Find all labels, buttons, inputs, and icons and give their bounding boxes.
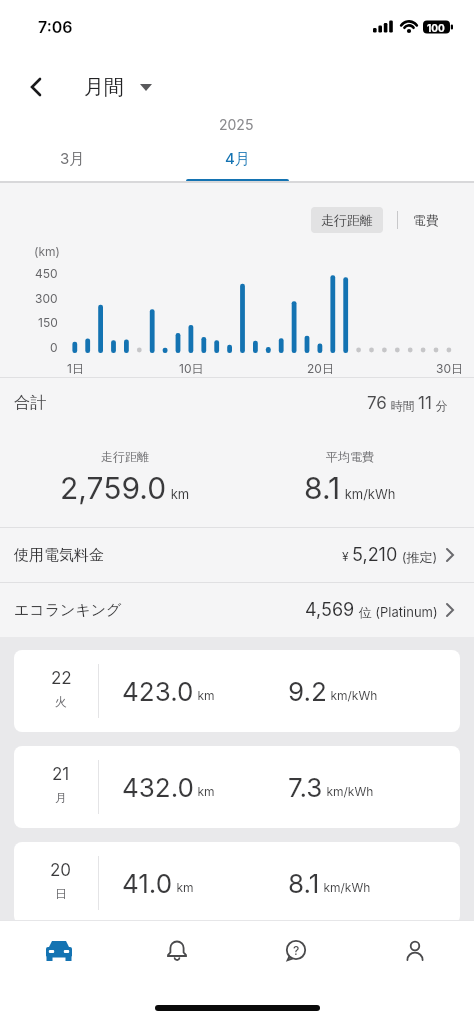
button[interactable]: エコランキング bbox=[0, 583, 474, 637]
button[interactable]: 3月 bbox=[34, 140, 110, 176]
button[interactable] bbox=[355, 920, 474, 982]
staticText: 8.1 bbox=[304, 470, 341, 506]
staticText: km bbox=[173, 880, 194, 895]
staticText: 432.0 bbox=[122, 772, 194, 803]
button[interactable] bbox=[18, 69, 54, 105]
staticText: ¥ bbox=[342, 549, 352, 564]
staticText: 21 bbox=[52, 764, 70, 785]
staticText: 20 bbox=[50, 860, 72, 881]
staticText: 11 bbox=[418, 393, 432, 414]
staticText: ? bbox=[293, 943, 300, 958]
staticText: km bbox=[194, 784, 215, 799]
staticText: 日 bbox=[55, 886, 67, 901]
staticText: 100 bbox=[427, 22, 445, 34]
staticText: (km) bbox=[34, 244, 60, 259]
button[interactable]: 使用電気料金 bbox=[0, 528, 474, 582]
staticText: 76 bbox=[367, 393, 387, 414]
staticText: 4月 bbox=[225, 149, 250, 168]
staticText: km/kWh bbox=[341, 486, 396, 502]
staticText: 30日 bbox=[436, 361, 463, 376]
staticText: 41.0 bbox=[122, 868, 173, 899]
staticText: 22 bbox=[51, 668, 72, 689]
staticText: km/kWh bbox=[320, 880, 371, 895]
button[interactable]: 21 bbox=[14, 746, 460, 828]
button[interactable] bbox=[118, 920, 236, 982]
button[interactable]: 走行距離 bbox=[311, 207, 383, 233]
staticText: 2025 bbox=[219, 116, 254, 133]
staticText: km/kWh bbox=[323, 784, 374, 799]
button[interactable]: 4月 bbox=[199, 140, 275, 176]
staticText: 位 (Platinum) bbox=[355, 604, 438, 620]
staticText: 7.3 bbox=[288, 772, 323, 803]
staticText: 0 bbox=[50, 340, 58, 355]
staticText: 450 bbox=[35, 266, 58, 281]
staticText: 423.0 bbox=[122, 676, 194, 707]
staticText: 電費 bbox=[413, 212, 439, 228]
staticText: 合計 bbox=[14, 393, 46, 413]
staticText: 走行距離 bbox=[321, 212, 373, 228]
staticText: 走行距離 bbox=[101, 449, 149, 464]
staticText: 使用電気料金 bbox=[14, 546, 104, 565]
staticText: 時間 bbox=[387, 398, 418, 413]
staticText: 5,210 bbox=[352, 544, 398, 566]
button[interactable]: 電費 bbox=[413, 207, 439, 233]
staticText: (推定) bbox=[398, 549, 438, 565]
button[interactable]: 22 bbox=[14, 650, 460, 732]
staticText: 20日 bbox=[307, 361, 334, 376]
staticText: km/kWh bbox=[327, 688, 378, 703]
staticText: 150 bbox=[38, 315, 58, 330]
staticText: 8.1 bbox=[288, 868, 320, 899]
staticText: 月 bbox=[55, 790, 67, 805]
staticText: km bbox=[194, 688, 215, 703]
staticText: 300 bbox=[35, 291, 58, 306]
button[interactable]: ? bbox=[236, 920, 355, 982]
staticText: 3月 bbox=[60, 149, 85, 168]
staticText: 9.2 bbox=[288, 676, 327, 707]
staticText: 10日 bbox=[179, 361, 204, 376]
staticText: 平均電費 bbox=[326, 449, 374, 464]
button[interactable]: 20 bbox=[14, 842, 460, 924]
button[interactable] bbox=[0, 920, 118, 982]
staticText: エコランキング bbox=[14, 601, 122, 620]
staticText: 1日 bbox=[67, 361, 84, 376]
staticText: 4,569 bbox=[305, 599, 355, 621]
button[interactable]: 月間 bbox=[84, 69, 152, 105]
staticText: 分 bbox=[432, 398, 448, 413]
staticText: km bbox=[167, 486, 190, 502]
staticText: 2,759.0 bbox=[60, 470, 167, 506]
staticText: 火 bbox=[55, 694, 67, 709]
staticText: 月間 bbox=[84, 75, 124, 100]
staticText: 7:06 bbox=[38, 17, 73, 36]
